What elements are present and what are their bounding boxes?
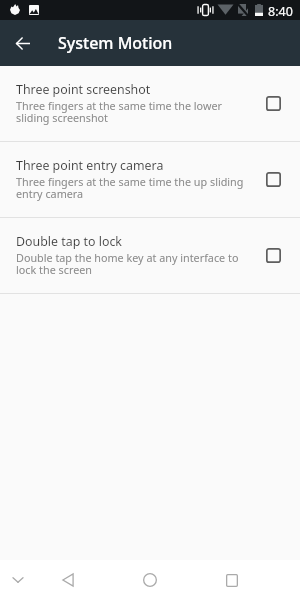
button[interactable]: Back: [48, 560, 88, 600]
staticText: Three point entry camera: [16, 157, 164, 174]
button[interactable]: Hide keyboard: [0, 560, 40, 600]
button[interactable]: Back: [7, 27, 39, 59]
staticText: Three fingers at the same time the lower…: [16, 98, 249, 125]
staticText: Double tap the home key at any interface…: [16, 250, 249, 277]
button[interactable]: Double tap to lock: [0, 218, 300, 293]
staticText: System Motion: [58, 32, 173, 54]
staticText: 8:40: [268, 3, 293, 20]
button[interactable]: Three point screenshot: [0, 66, 300, 141]
staticText: Three fingers at the same time the up sl…: [16, 174, 249, 201]
button[interactable]: Three point entry camera: [0, 142, 300, 217]
staticText: Double tap to lock: [16, 233, 122, 250]
button[interactable]: Recents: [212, 560, 252, 600]
button[interactable]: Home: [130, 560, 170, 600]
staticText: Three point screenshot: [16, 81, 151, 98]
